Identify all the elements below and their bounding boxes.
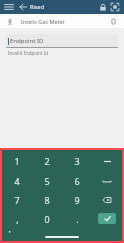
- staticText: Read: [30, 3, 45, 11]
- button[interactable]: Device: [108, 16, 119, 27]
- button[interactable]: 8: [32, 190, 62, 209]
- button[interactable]: Minus: [92, 151, 122, 171]
- button[interactable]: ,: [2, 209, 32, 228]
- staticText: Intelis Gas Meter: [21, 18, 65, 25]
- staticText: 8: [44, 194, 50, 206]
- button[interactable]: 9: [62, 190, 92, 209]
- staticText: 5: [44, 175, 50, 187]
- button[interactable]: 6: [62, 171, 92, 190]
- button[interactable]: Delete: [92, 190, 122, 209]
- staticText: 3: [74, 155, 80, 167]
- staticText: 9: [74, 194, 80, 206]
- button[interactable]: 1: [2, 151, 32, 171]
- staticText: 2: [44, 155, 50, 167]
- button[interactable]: Meter: [5, 17, 14, 26]
- button[interactable]: 3: [62, 151, 92, 171]
- button[interactable]: Keyboard options: [8, 230, 12, 234]
- button[interactable]: 2: [32, 151, 62, 171]
- button[interactable]: Lock: [98, 2, 108, 12]
- staticText: 6: [74, 175, 80, 187]
- button[interactable]: Enter: [92, 209, 122, 228]
- button[interactable]: 4: [2, 171, 32, 190]
- button[interactable]: Space: [92, 171, 122, 190]
- button[interactable]: 5: [32, 171, 62, 190]
- button[interactable]: 0: [32, 209, 62, 228]
- staticText: Invalid Endpoint Id: [8, 50, 48, 56]
- staticText: 0: [44, 213, 50, 225]
- staticText: Endpoint ID: [10, 37, 44, 45]
- staticText: 1: [14, 155, 20, 167]
- button[interactable]: Scan barcode: [109, 1, 121, 13]
- staticText: ,: [16, 213, 19, 225]
- button[interactable]: Endpoint ID: [6, 34, 118, 47]
- staticText: .: [76, 213, 79, 225]
- button[interactable]: Menu: [3, 1, 15, 13]
- button[interactable]: .: [62, 209, 92, 228]
- staticText: 7: [14, 194, 20, 206]
- staticText: 4: [14, 175, 20, 187]
- button[interactable]: 7: [2, 190, 32, 209]
- button[interactable]: Back: [18, 2, 28, 12]
